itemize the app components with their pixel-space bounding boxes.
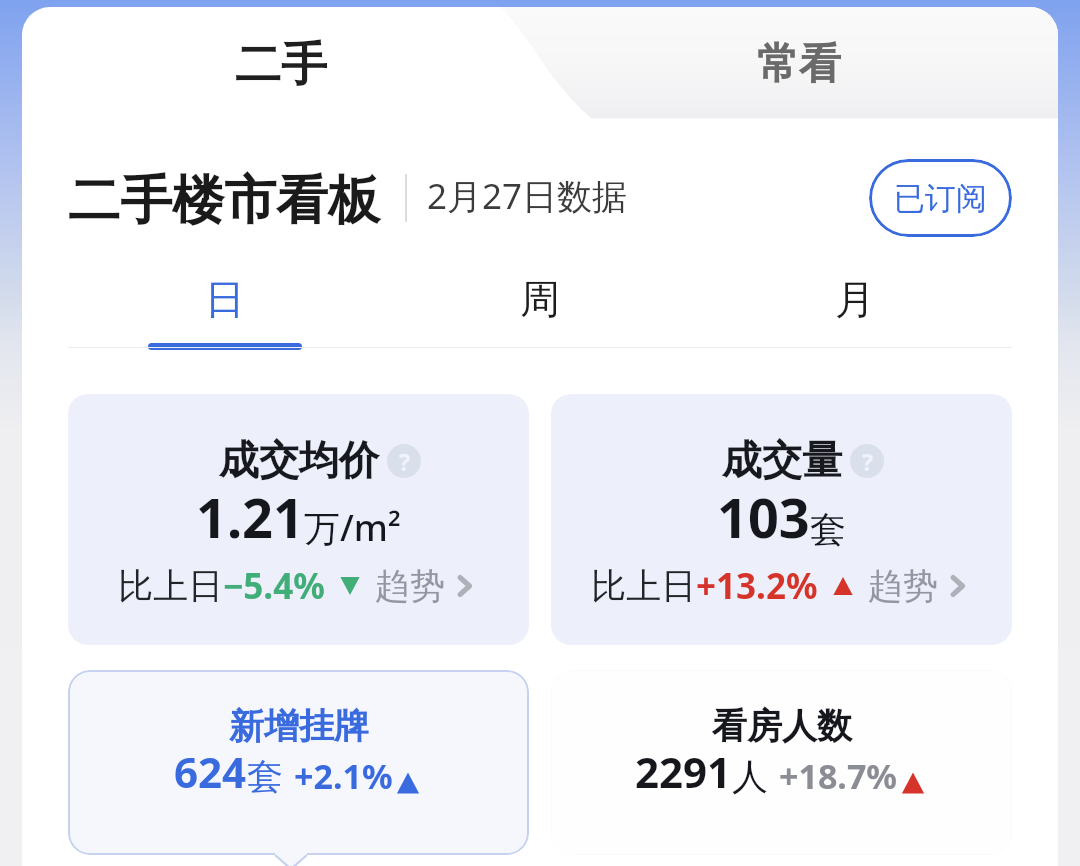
staticText: ? — [399, 446, 410, 477]
button[interactable]: 常看 — [540, 7, 1058, 125]
staticText: 二手楼市看板 — [68, 168, 380, 234]
staticText: 比上日 — [591, 564, 696, 608]
staticText: ? — [862, 446, 873, 477]
staticText: 套 — [810, 507, 846, 552]
staticText: 2291 — [635, 743, 732, 800]
button[interactable]: 成交量 — [551, 394, 1012, 645]
staticText: 624 — [174, 743, 247, 800]
staticText: 趋势 — [868, 564, 938, 608]
button[interactable]: 看房人数 — [551, 670, 1012, 855]
staticText: 新增挂牌 — [229, 704, 369, 748]
staticText: 趋势 — [375, 564, 445, 608]
button[interactable]: 趋势 — [375, 564, 479, 608]
staticText: 人 — [732, 754, 768, 799]
staticText: 成交量 — [722, 435, 842, 485]
staticText: 周 — [520, 274, 560, 324]
staticText: 常看 — [757, 38, 841, 91]
staticText: 比上日 — [118, 564, 223, 608]
button[interactable]: 指标说明 — [850, 444, 884, 478]
button[interactable]: 周 — [382, 271, 697, 350]
button[interactable]: 指标说明 — [387, 444, 421, 478]
button[interactable]: 新增挂牌 — [68, 670, 529, 855]
button[interactable]: 二手 — [22, 7, 540, 125]
staticText: 日 — [205, 274, 245, 324]
staticText: 1.21 — [196, 480, 304, 554]
staticText: 二手 — [235, 36, 327, 94]
staticText: 2月27日数据 — [427, 172, 628, 220]
staticText: 万/m² — [304, 503, 401, 552]
staticText: 成交均价 — [219, 435, 379, 485]
button[interactable]: 成交均价 — [68, 394, 529, 645]
staticText: +13.2% — [696, 562, 818, 610]
staticText: +18.7% — [779, 753, 898, 799]
staticText: 套 — [247, 754, 283, 799]
staticText: 看房人数 — [712, 704, 852, 748]
staticText: +2.1% — [294, 753, 393, 799]
button[interactable]: 日 — [68, 271, 382, 350]
staticText: 103 — [717, 480, 810, 554]
staticText: 月 — [835, 274, 875, 324]
staticText: 已订阅 — [894, 179, 987, 218]
button[interactable]: 月 — [697, 271, 1012, 350]
button[interactable]: 趋势 — [868, 564, 972, 608]
staticText: −5.4% — [223, 562, 325, 610]
button[interactable]: 已订阅 — [869, 159, 1012, 237]
